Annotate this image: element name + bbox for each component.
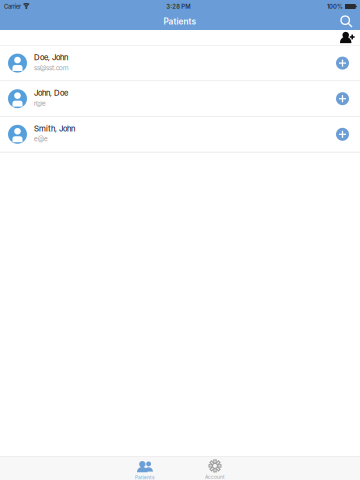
staticText: Smith, John: [34, 124, 75, 133]
staticText: Patients: [163, 16, 196, 26]
staticText: r@e: [34, 99, 46, 107]
staticText: 100%: [327, 3, 343, 10]
staticText: e@e: [34, 135, 48, 143]
staticText: ss@sst.com: [34, 64, 68, 72]
staticText: Account: [205, 474, 225, 480]
button[interactable]: Smith, John: [0, 117, 360, 152]
button[interactable]: Doe, John: [0, 46, 360, 81]
staticText: Carrier: [4, 3, 21, 10]
button[interactable]: Add patient: [332, 30, 360, 45]
button[interactable]: John, Doe: [0, 81, 360, 116]
button[interactable]: Account: [180, 458, 250, 480]
staticText: Patients: [135, 474, 155, 480]
staticText: Doe, John: [34, 52, 68, 62]
staticText: 3:28 PM: [166, 3, 190, 10]
staticText: John, Doe: [34, 88, 68, 98]
button[interactable]: Patients: [110, 458, 180, 480]
button[interactable]: Search: [332, 13, 360, 30]
